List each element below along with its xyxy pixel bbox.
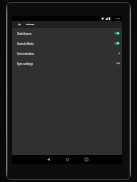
staticText: 12:30	[115, 17, 120, 20]
button[interactable]: Sync settings	[12, 58, 122, 68]
staticText: Sync settings	[17, 62, 33, 66]
staticText: Settings	[26, 23, 35, 26]
button[interactable]: Sound effects	[12, 38, 122, 48]
staticText: Sound effects	[17, 42, 34, 46]
button[interactable]: Dark theme	[12, 28, 122, 38]
staticText: Dark theme	[17, 32, 32, 36]
staticText: Set reminders	[17, 52, 35, 56]
button[interactable]: Navigate up	[12, 21, 27, 28]
button[interactable]: Set reminders	[12, 48, 122, 58]
button[interactable]: Home	[61, 155, 73, 164]
button[interactable]: Back	[42, 155, 54, 164]
button[interactable]: Recent apps	[80, 155, 92, 164]
